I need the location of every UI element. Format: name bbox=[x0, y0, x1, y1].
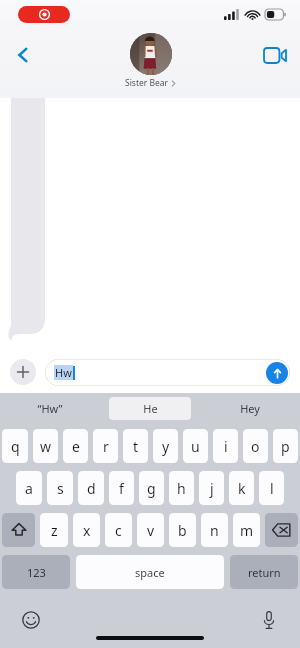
staticText: Hey bbox=[240, 401, 260, 416]
staticText: d bbox=[87, 479, 96, 498]
button[interactable]: Emoji bbox=[18, 607, 44, 633]
button[interactable]: l bbox=[259, 471, 284, 505]
button[interactable]: u bbox=[183, 429, 208, 463]
button[interactable]: g bbox=[139, 471, 164, 505]
button[interactable]: return bbox=[230, 555, 298, 589]
button[interactable]: “Hw” bbox=[9, 397, 91, 420]
staticText: 123 bbox=[27, 565, 46, 580]
button[interactable]: i bbox=[213, 429, 238, 463]
staticText: e bbox=[72, 437, 80, 456]
staticText: “Hw” bbox=[37, 401, 63, 416]
staticText: return bbox=[248, 565, 281, 580]
button[interactable]: Hey bbox=[209, 397, 291, 420]
staticText: t bbox=[133, 437, 139, 456]
staticText: v bbox=[147, 521, 155, 540]
button[interactable]: Recording bbox=[18, 6, 70, 23]
staticText: k bbox=[238, 479, 246, 498]
staticText: space bbox=[135, 565, 165, 580]
button[interactable]: Add attachment bbox=[10, 359, 36, 385]
staticText: u bbox=[191, 437, 200, 456]
button[interactable]: n bbox=[201, 513, 228, 547]
staticText: m bbox=[240, 521, 254, 540]
button[interactable]: x bbox=[73, 513, 100, 547]
staticText: q bbox=[11, 437, 20, 456]
button[interactable]: e bbox=[63, 429, 88, 463]
staticText: Hw bbox=[55, 365, 72, 380]
button[interactable]: space bbox=[76, 555, 224, 589]
staticText: n bbox=[210, 521, 219, 540]
staticText: y bbox=[162, 437, 170, 456]
button[interactable]: w bbox=[33, 429, 58, 463]
button[interactable]: FaceTime video call bbox=[260, 40, 290, 70]
button[interactable]: Dictation bbox=[256, 607, 282, 633]
staticText: a bbox=[25, 479, 33, 498]
button[interactable]: s bbox=[47, 471, 73, 505]
button[interactable]: j bbox=[199, 471, 224, 505]
staticText: h bbox=[177, 479, 186, 498]
button[interactable]: f bbox=[109, 471, 134, 505]
button[interactable]: a bbox=[16, 471, 42, 505]
staticText: z bbox=[51, 521, 58, 540]
button[interactable]: h bbox=[169, 471, 194, 505]
button[interactable]: Hw bbox=[45, 359, 290, 386]
button[interactable]: d bbox=[78, 471, 104, 505]
staticText: Sister Bear bbox=[125, 77, 169, 89]
button[interactable]: y bbox=[153, 429, 178, 463]
button[interactable]: t bbox=[123, 429, 148, 463]
staticText: p bbox=[281, 437, 290, 456]
staticText: j bbox=[210, 479, 214, 498]
staticText: x bbox=[83, 521, 91, 540]
staticText: s bbox=[57, 479, 64, 498]
button[interactable]: Delete bbox=[265, 513, 298, 547]
staticText: o bbox=[251, 437, 260, 456]
button[interactable]: r bbox=[93, 429, 118, 463]
button[interactable]: v bbox=[137, 513, 164, 547]
button[interactable]: k bbox=[229, 471, 254, 505]
staticText: g bbox=[147, 479, 156, 498]
staticText: r bbox=[103, 437, 109, 456]
button[interactable]: He bbox=[109, 397, 191, 420]
staticText: f bbox=[119, 479, 124, 498]
staticText: b bbox=[178, 521, 187, 540]
button[interactable]: Send bbox=[266, 362, 288, 384]
button[interactable]: c bbox=[105, 513, 132, 547]
staticText: He bbox=[143, 401, 158, 416]
button[interactable]: m bbox=[233, 513, 260, 547]
staticText: i bbox=[224, 437, 228, 456]
button[interactable]: Shift bbox=[2, 513, 35, 547]
button[interactable]: q bbox=[2, 429, 28, 463]
button[interactable]: Sister Bear bbox=[125, 33, 176, 89]
button[interactable]: p bbox=[273, 429, 298, 463]
button[interactable]: o bbox=[243, 429, 268, 463]
staticText: w bbox=[40, 437, 52, 456]
button[interactable]: z bbox=[40, 513, 68, 547]
staticText: c bbox=[115, 521, 122, 540]
button[interactable]: 123 bbox=[2, 555, 70, 589]
button[interactable]: b bbox=[169, 513, 196, 547]
staticText: l bbox=[270, 479, 274, 498]
button[interactable]: Back bbox=[8, 40, 38, 70]
